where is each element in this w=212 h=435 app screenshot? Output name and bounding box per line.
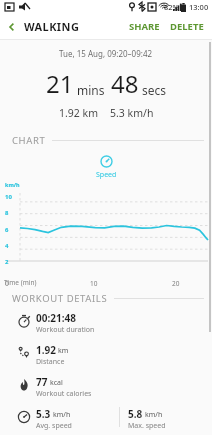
- staticText: mins: [77, 82, 105, 98]
- staticText: 13:00: [189, 2, 209, 12]
- staticText: Time (min): [4, 278, 37, 287]
- button[interactable]: Speed: [100, 155, 113, 168]
- staticText: SHARE: [129, 20, 160, 33]
- button[interactable]: Back: [0, 14, 24, 39]
- button[interactable]: 00:21:48: [12, 311, 204, 335]
- staticText: km/h: [145, 410, 163, 420]
- staticText: kcal: [50, 378, 63, 388]
- staticText: 5.3: [36, 407, 51, 421]
- staticText: 1.92 km: [59, 106, 98, 120]
- staticText: Distance: [36, 357, 65, 367]
- staticText: 0: [5, 279, 9, 287]
- staticText: 77: [36, 375, 48, 389]
- staticText: 82%: [164, 2, 179, 12]
- staticText: Speed: [96, 170, 117, 180]
- staticText: 21: [46, 67, 74, 100]
- staticText: 5.8: [128, 407, 143, 421]
- staticText: Max. speed: [128, 421, 166, 431]
- staticText: km/h: [53, 410, 71, 420]
- staticText: 8: [5, 209, 9, 217]
- staticText: Tue, 15 Aug, 09:20–09:42: [59, 48, 153, 59]
- staticText: 10: [90, 279, 98, 287]
- button[interactable]: 77: [12, 375, 204, 399]
- staticText: km/h: [5, 181, 20, 188]
- staticText: 5.3 km/h: [110, 106, 154, 120]
- button[interactable]: DELETE: [165, 14, 212, 39]
- staticText: 2: [5, 258, 9, 266]
- staticText: Avg. speed: [36, 421, 72, 431]
- button[interactable]: SHARE: [124, 14, 165, 39]
- staticText: 10: [5, 193, 12, 201]
- staticText: WORKOUT DETAILS: [12, 292, 108, 305]
- staticText: 48: [111, 67, 139, 100]
- staticText: secs: [142, 82, 167, 98]
- staticText: Workout duration: [36, 325, 95, 335]
- staticText: WALKING: [24, 19, 80, 34]
- staticText: 4: [5, 242, 9, 250]
- staticText: Workout calories: [36, 389, 92, 399]
- staticText: km: [58, 346, 69, 356]
- staticText: CHART: [12, 134, 46, 147]
- staticText: 20: [172, 279, 180, 287]
- button[interactable]: 5.3: [12, 407, 204, 431]
- button[interactable]: 1.92: [12, 343, 204, 367]
- staticText: 1.92: [36, 343, 56, 357]
- staticText: 6: [5, 226, 9, 234]
- staticText: 00:21:48: [36, 311, 76, 325]
- staticText: DELETE: [170, 20, 204, 33]
